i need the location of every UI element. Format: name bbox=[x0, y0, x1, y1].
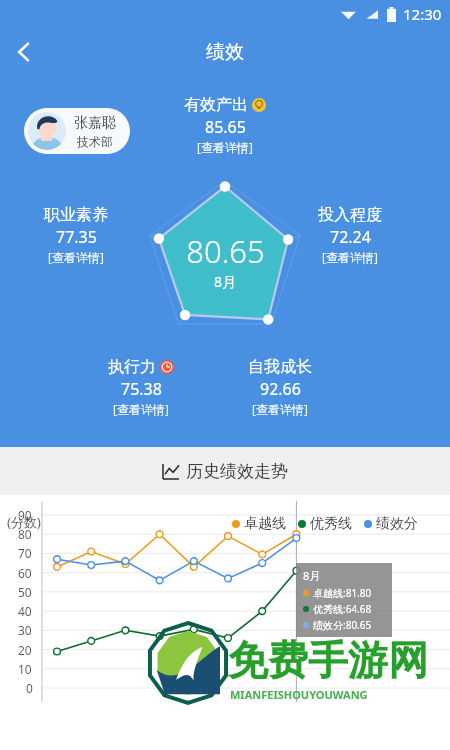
staticText: 职业素养 bbox=[44, 205, 108, 225]
staticText: 卓越线:81.80 bbox=[313, 586, 372, 600]
staticText: 72.24 bbox=[330, 226, 371, 248]
staticText: [查看详情] bbox=[48, 249, 104, 265]
staticText: 有效产出 bbox=[184, 95, 248, 115]
staticText: 50 bbox=[18, 584, 32, 600]
staticText: (分数) bbox=[7, 513, 41, 531]
staticText: [查看详情] bbox=[113, 401, 169, 417]
staticText: 投入程度 bbox=[318, 205, 382, 225]
staticText: 优秀线 bbox=[310, 515, 352, 533]
staticText: 20 bbox=[18, 642, 32, 658]
staticText: 执行力 bbox=[108, 357, 156, 377]
button[interactable]: Back bbox=[0, 28, 48, 76]
staticText: 卓越线 bbox=[244, 515, 286, 533]
staticText: 60 bbox=[18, 565, 32, 581]
staticText: 92.66 bbox=[260, 378, 301, 400]
staticText: 0 bbox=[26, 680, 33, 696]
staticText: 80 bbox=[18, 526, 32, 542]
staticText: 85.65 bbox=[205, 116, 246, 138]
staticText: 历史绩效走势 bbox=[186, 461, 288, 482]
button[interactable]: 投入程度 bbox=[318, 205, 382, 265]
button[interactable]: 绩效分 bbox=[364, 515, 418, 533]
staticText: 70 bbox=[18, 545, 32, 561]
staticText: 自我成长 bbox=[248, 357, 312, 377]
button[interactable]: 职业素养 bbox=[44, 205, 108, 265]
staticText: 75.38 bbox=[121, 378, 162, 400]
staticText: 绩效分:80.65 bbox=[313, 618, 372, 632]
button[interactable]: 自我成长 bbox=[248, 357, 312, 417]
staticText: 10 bbox=[18, 661, 32, 677]
staticText: 免费手游网 bbox=[228, 635, 428, 685]
button[interactable]: 有效产出 bbox=[184, 95, 266, 155]
staticText: 绩效分 bbox=[376, 515, 418, 533]
staticText: [查看详情] bbox=[252, 401, 308, 417]
staticText: 80.65 bbox=[186, 230, 265, 272]
staticText: [查看详情] bbox=[197, 139, 253, 155]
staticText: 30 bbox=[18, 622, 32, 638]
staticText: 优秀线:64.68 bbox=[313, 602, 372, 616]
staticText: 90 bbox=[18, 507, 32, 523]
staticText: MIANFEISHOUYOUWANG bbox=[230, 687, 368, 702]
staticText: 技术部 bbox=[77, 134, 113, 149]
staticText: 张嘉聪 bbox=[74, 114, 116, 132]
staticText: 8月 bbox=[303, 568, 321, 583]
button[interactable]: 优秀线 bbox=[298, 515, 352, 533]
button[interactable]: 卓越线 bbox=[232, 515, 286, 533]
staticText: 40 bbox=[18, 603, 32, 619]
button[interactable]: 执行力 bbox=[108, 357, 174, 417]
staticText: 绩效 bbox=[206, 40, 244, 64]
button[interactable]: 张嘉聪 bbox=[24, 108, 130, 154]
staticText: 12:30 bbox=[403, 4, 442, 24]
staticText: 8月 bbox=[214, 272, 237, 291]
staticText: [查看详情] bbox=[322, 249, 378, 265]
staticText: 77.35 bbox=[56, 226, 97, 248]
